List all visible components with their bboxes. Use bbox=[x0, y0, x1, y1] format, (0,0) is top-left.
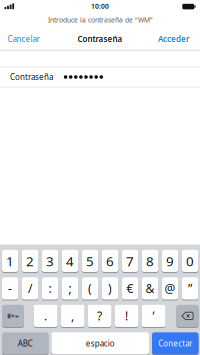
staticText: 7 bbox=[126, 252, 134, 270]
staticText: espacio bbox=[86, 338, 115, 349]
staticText: 1 bbox=[6, 252, 14, 270]
button[interactable]: 4 bbox=[62, 249, 78, 272]
button[interactable]: , bbox=[61, 304, 85, 327]
staticText: ! bbox=[125, 308, 128, 324]
button[interactable]: Cancelar bbox=[7, 34, 39, 44]
button[interactable]: Contraseña bbox=[0, 66, 200, 87]
staticText: Contraseña bbox=[10, 72, 53, 82]
staticText: ? bbox=[97, 308, 102, 324]
button[interactable]: ( bbox=[82, 277, 98, 300]
staticText: / bbox=[28, 280, 32, 296]
staticText: & bbox=[146, 280, 155, 296]
button[interactable]: Conectar bbox=[152, 332, 198, 355]
staticText: @ bbox=[165, 280, 176, 296]
staticText: 2 bbox=[26, 252, 34, 270]
button[interactable]: ; bbox=[62, 277, 78, 300]
button[interactable]: / bbox=[22, 277, 38, 300]
staticText: 8 bbox=[146, 252, 154, 270]
staticText: ; bbox=[69, 280, 72, 296]
staticText: ’ bbox=[153, 308, 155, 324]
button[interactable]: ) bbox=[102, 277, 118, 300]
button[interactable]: ? bbox=[88, 304, 112, 327]
staticText: ABC bbox=[18, 338, 33, 349]
staticText: ) bbox=[108, 280, 112, 296]
button[interactable]: espacio bbox=[51, 332, 149, 355]
staticText: ” bbox=[188, 280, 192, 296]
button[interactable]: 6 bbox=[102, 249, 118, 272]
button[interactable]: #+= bbox=[2, 304, 24, 327]
button[interactable]: 2 bbox=[22, 249, 38, 272]
staticText: : bbox=[49, 280, 52, 296]
button[interactable]: € bbox=[122, 277, 138, 300]
staticText: #+= bbox=[7, 311, 19, 320]
button[interactable]: 0 bbox=[182, 249, 198, 272]
button[interactable]: Eliminar bbox=[176, 304, 198, 327]
staticText: 5 bbox=[86, 252, 94, 270]
staticText: 3 bbox=[46, 252, 54, 270]
staticText: 0 bbox=[186, 252, 194, 270]
staticText: Contraseña bbox=[77, 34, 122, 44]
staticText: 10:00 bbox=[91, 2, 109, 11]
button[interactable]: 5 bbox=[82, 249, 98, 272]
staticText: 9 bbox=[166, 252, 174, 270]
button[interactable]: ! bbox=[115, 304, 139, 327]
staticText: 4 bbox=[66, 252, 74, 270]
button[interactable]: @ bbox=[162, 277, 178, 300]
staticText: - bbox=[8, 280, 12, 296]
button[interactable]: 3 bbox=[42, 249, 58, 272]
staticText: ( bbox=[88, 280, 92, 296]
staticText: Cancelar bbox=[7, 34, 39, 44]
button[interactable]: & bbox=[142, 277, 158, 300]
button[interactable]: 7 bbox=[122, 249, 138, 272]
staticText: . bbox=[44, 308, 47, 324]
button[interactable]: 9 bbox=[162, 249, 178, 272]
button[interactable]: ’ bbox=[142, 304, 166, 327]
button[interactable]: ” bbox=[182, 277, 198, 300]
button[interactable]: 8 bbox=[142, 249, 158, 272]
button[interactable]: . bbox=[34, 304, 58, 327]
staticText: , bbox=[71, 308, 74, 324]
staticText: € bbox=[127, 280, 134, 296]
button[interactable]: ABC bbox=[2, 332, 48, 355]
button[interactable]: 1 bbox=[2, 249, 18, 272]
button[interactable]: - bbox=[2, 277, 18, 300]
staticText: Conectar bbox=[158, 338, 192, 349]
staticText: Introduce la contraseña de “WM” bbox=[48, 16, 152, 24]
button[interactable]: : bbox=[42, 277, 58, 300]
staticText: 6 bbox=[106, 252, 114, 270]
button[interactable]: Acceder bbox=[158, 34, 189, 44]
staticText: Acceder bbox=[158, 34, 189, 44]
